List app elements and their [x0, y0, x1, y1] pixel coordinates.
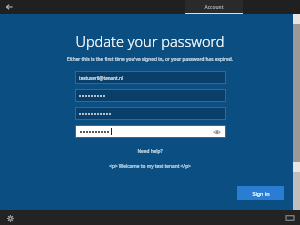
- staticText: testuser6@tenant.nl: [79, 75, 123, 81]
- button[interactable]: Show password: [76, 126, 225, 137]
- staticText: Update your password: [75, 31, 225, 51]
- staticText: <p> Welcome to my test tenant </p>: [109, 163, 191, 170]
- staticText: Account: [204, 4, 224, 11]
- button[interactable]: Settings: [4, 212, 16, 224]
- button[interactable]: [75, 89, 226, 102]
- button[interactable]: Account: [185, 0, 243, 14]
- button[interactable]: Show password: [212, 127, 221, 136]
- staticText: Sign in: [252, 190, 270, 197]
- button[interactable]: Sign in: [237, 186, 284, 200]
- button[interactable]: Keyboard: [284, 212, 296, 224]
- button[interactable]: Back: [3, 1, 15, 13]
- button[interactable]: testuser6@tenant.nl: [75, 71, 226, 84]
- staticText: Either this is the first time you've sig…: [67, 56, 233, 63]
- button[interactable]: [75, 107, 226, 120]
- button[interactable]: Need help?: [133, 147, 167, 156]
- staticText: Need help?: [137, 148, 163, 155]
